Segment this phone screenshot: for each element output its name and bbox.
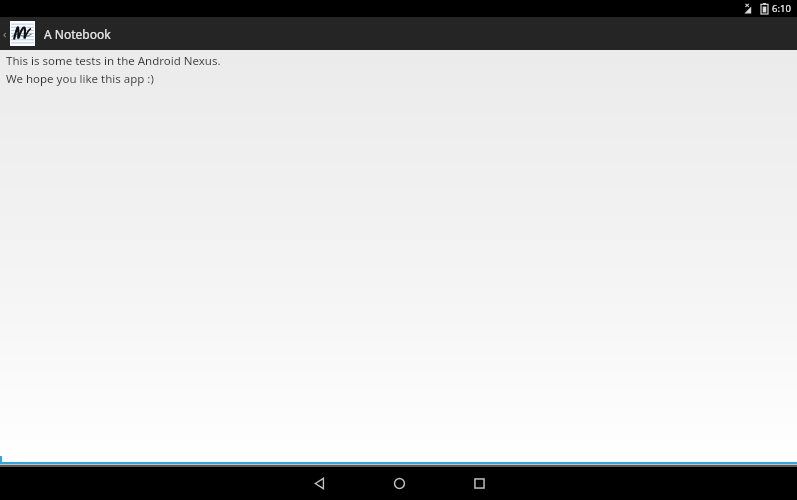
staticText: A Notebook xyxy=(44,26,111,42)
button[interactable]: Recent apps xyxy=(449,467,509,500)
button[interactable]: Back xyxy=(0,17,9,50)
button[interactable]: Back xyxy=(289,467,349,500)
staticText: This is some tests in the Android Nexus. xyxy=(6,53,221,69)
button[interactable]: A Notebook app icon xyxy=(10,21,35,46)
staticText: 6:10 xyxy=(772,2,791,15)
button[interactable]: Home xyxy=(369,467,429,500)
staticText: ‹ xyxy=(3,26,7,41)
staticText: We hope you like this app :) xyxy=(6,71,154,87)
